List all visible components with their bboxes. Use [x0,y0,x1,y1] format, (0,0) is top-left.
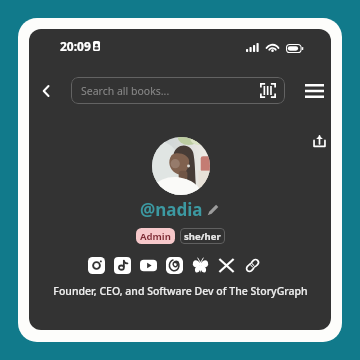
button[interactable]: YouTube [140,257,157,274]
button[interactable]: she/her [180,228,225,244]
staticText: Search all books... [81,84,170,98]
button[interactable]: Edit profile [206,203,220,217]
button[interactable]: Bluesky [192,257,209,274]
button[interactable]: Instagram [88,257,105,274]
staticText: @nadia [140,198,203,221]
button[interactable]: Website link [244,257,261,274]
button[interactable]: Share [308,130,330,152]
staticText: Admin [140,230,171,243]
button[interactable]: Back [36,81,56,101]
staticText: she/her [184,230,221,243]
staticText: 20:09 [60,38,91,54]
staticText: Founder, CEO, and Software Dev of The St… [53,284,308,298]
button[interactable]: Profile photo [152,137,210,195]
button[interactable]: Search all books... [71,77,285,104]
button[interactable]: X [218,257,235,274]
button[interactable]: Admin [136,228,175,244]
button[interactable]: Threads [166,257,183,274]
button[interactable]: Menu [302,78,327,103]
button[interactable]: TikTok [114,257,131,274]
